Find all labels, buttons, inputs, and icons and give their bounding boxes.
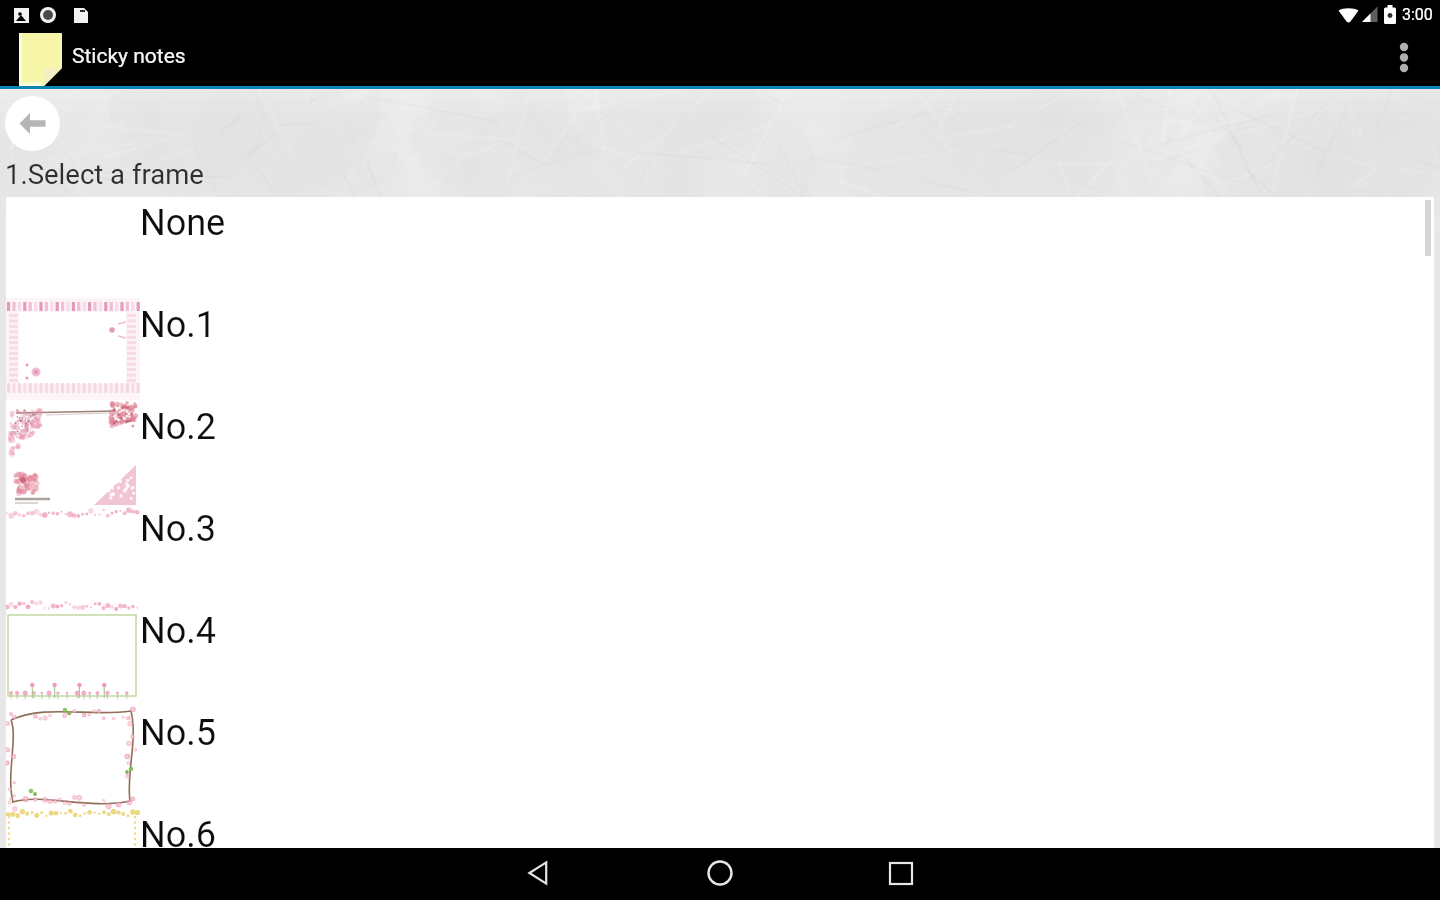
button[interactable]: No.3: [6, 503, 1434, 605]
staticText: No.1: [140, 304, 216, 346]
button[interactable]: Recent apps: [881, 853, 921, 893]
staticText: No.5: [140, 712, 216, 754]
button[interactable]: Home: [700, 853, 740, 893]
staticText: 1.Select a frame: [5, 158, 204, 190]
button[interactable]: More options: [1382, 29, 1440, 86]
staticText: No.6: [140, 814, 216, 848]
staticText: None: [140, 202, 226, 244]
button[interactable]: No.2: [6, 401, 1434, 503]
staticText: Sticky notes: [72, 44, 186, 69]
button[interactable]: No.6: [6, 809, 1434, 848]
button[interactable]: No.5: [6, 707, 1434, 809]
staticText: No.2: [140, 406, 216, 448]
button[interactable]: No.1: [6, 299, 1434, 401]
staticText: No.3: [140, 508, 216, 550]
button[interactable]: None: [6, 197, 1434, 299]
button[interactable]: No.4: [6, 605, 1434, 707]
button[interactable]: Back: [519, 853, 559, 893]
staticText: 3:00: [1402, 5, 1433, 24]
staticText: No.4: [140, 610, 216, 652]
button[interactable]: Back: [5, 96, 60, 151]
